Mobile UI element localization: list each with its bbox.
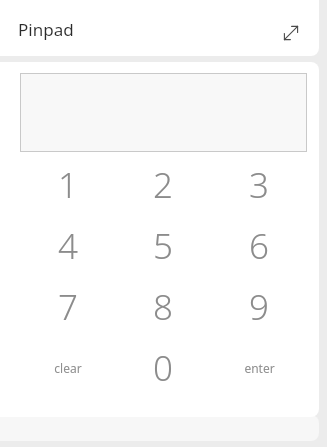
staticText: 1: [58, 161, 78, 209]
staticText: 0: [153, 344, 173, 392]
button[interactable]: Expand: [276, 18, 306, 48]
button[interactable]: 0: [115, 337, 211, 398]
staticText: enter: [244, 360, 275, 376]
staticText: 3: [249, 161, 269, 209]
button[interactable]: 3: [211, 154, 307, 215]
button[interactable]: 2: [115, 154, 211, 215]
button[interactable]: 5: [115, 215, 211, 276]
staticText: 5: [153, 222, 173, 270]
button[interactable]: 4: [20, 215, 115, 276]
button[interactable]: enter: [211, 337, 307, 398]
staticText: 8: [153, 283, 173, 331]
staticText: 9: [249, 283, 269, 331]
button[interactable]: 9: [211, 276, 307, 337]
staticText: 7: [58, 283, 78, 331]
staticText: Pinpad: [18, 18, 74, 41]
button[interactable]: 1: [20, 154, 115, 215]
staticText: 2: [153, 161, 173, 209]
button[interactable]: 7: [20, 276, 115, 337]
staticText: clear: [54, 360, 82, 376]
button[interactable]: [20, 73, 307, 152]
button[interactable]: clear: [20, 337, 115, 398]
staticText: 6: [249, 222, 269, 270]
button[interactable]: 6: [211, 215, 307, 276]
button[interactable]: 8: [115, 276, 211, 337]
staticText: 4: [58, 222, 78, 270]
